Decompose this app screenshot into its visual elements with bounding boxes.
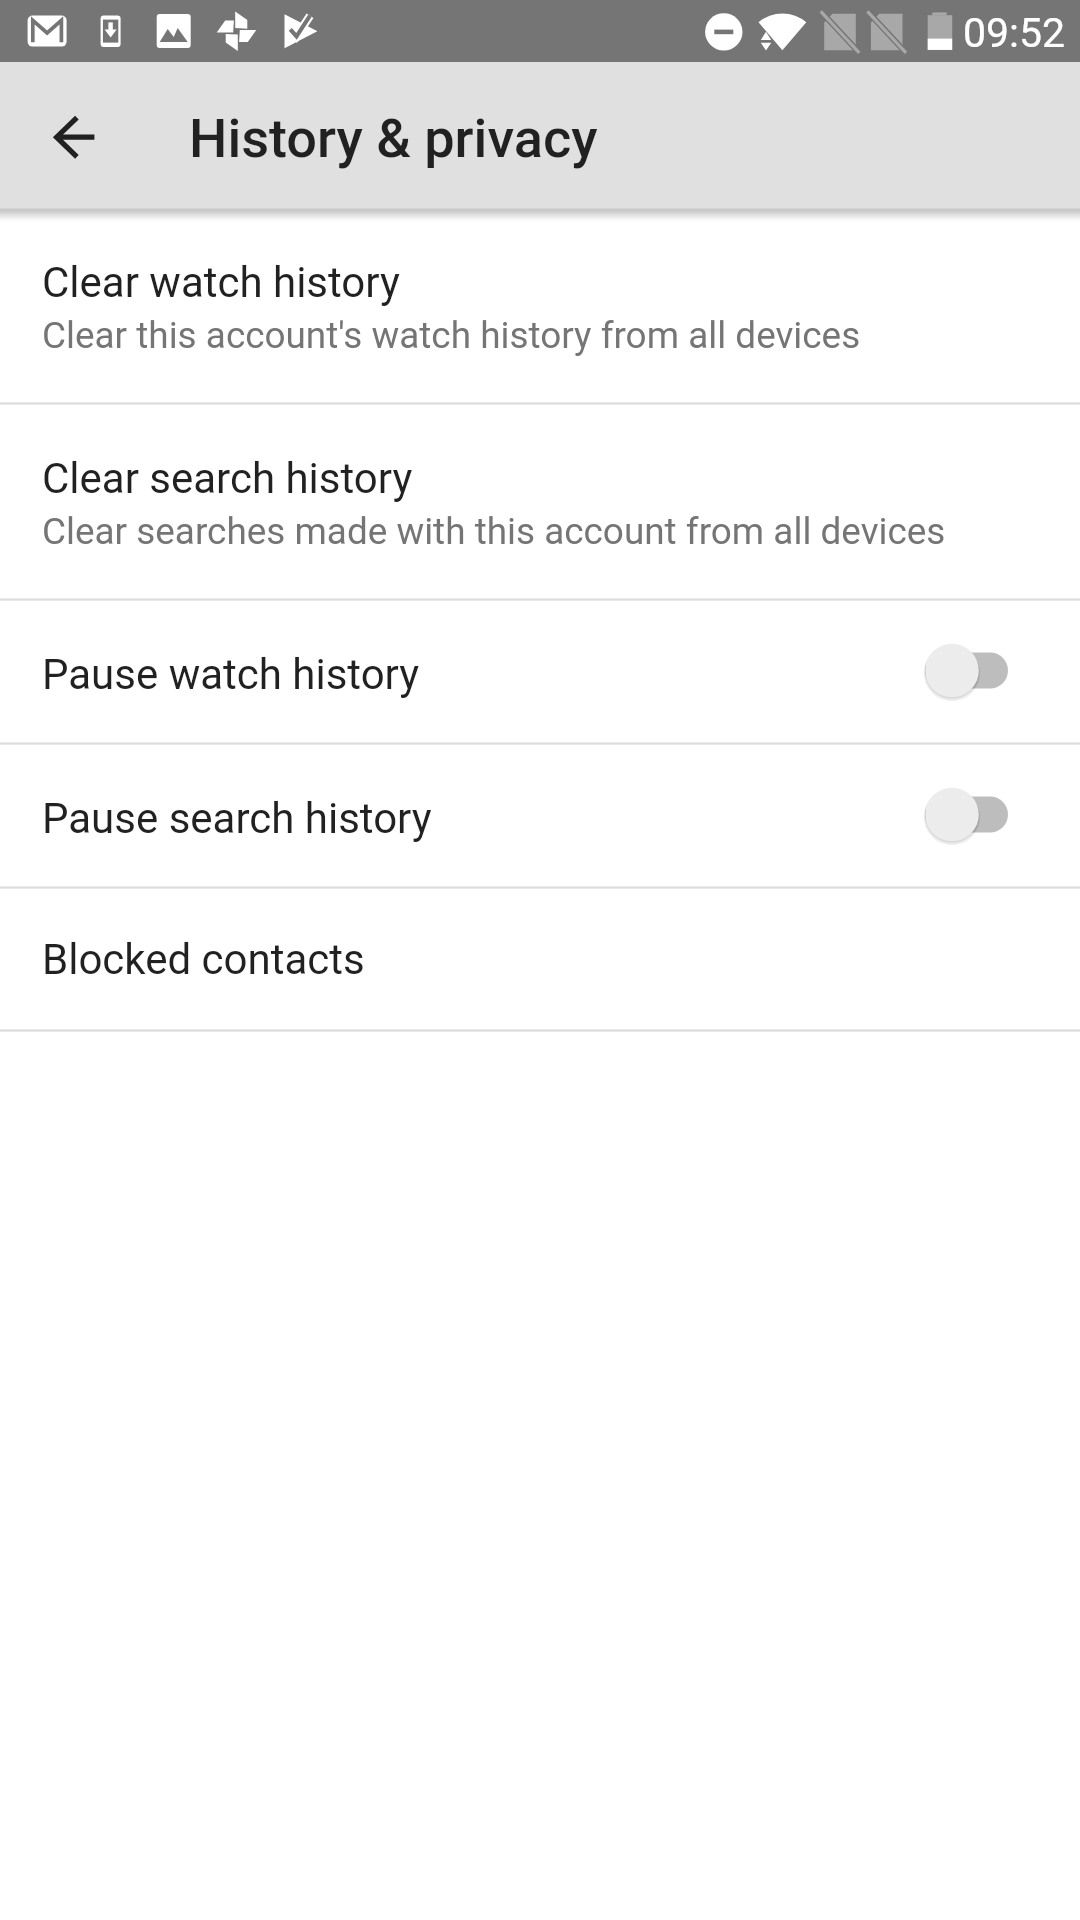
staticText: Clear this account's watch history from … <box>42 314 861 357</box>
staticText: Pause watch history <box>42 650 925 699</box>
button[interactable]: Pause search history <box>0 745 1080 886</box>
staticText: Clear search history <box>42 454 413 503</box>
staticText: 09:52 <box>963 9 1066 57</box>
button[interactable]: Back <box>5 68 141 204</box>
button[interactable]: Blocked contacts <box>0 889 1080 1029</box>
button[interactable]: Clear watch history <box>0 209 1080 402</box>
staticText: Blocked contacts <box>42 935 365 984</box>
button[interactable]: Pause search history <box>925 786 1008 846</box>
staticText: Clear searches made with this account fr… <box>42 510 946 553</box>
button[interactable]: Clear search history <box>0 405 1080 598</box>
button[interactable]: Pause watch history <box>0 601 1080 742</box>
staticText: Pause search history <box>42 794 925 843</box>
staticText: Clear watch history <box>42 258 400 307</box>
staticText: History & privacy <box>189 107 598 170</box>
button[interactable]: Pause watch history <box>925 642 1008 702</box>
